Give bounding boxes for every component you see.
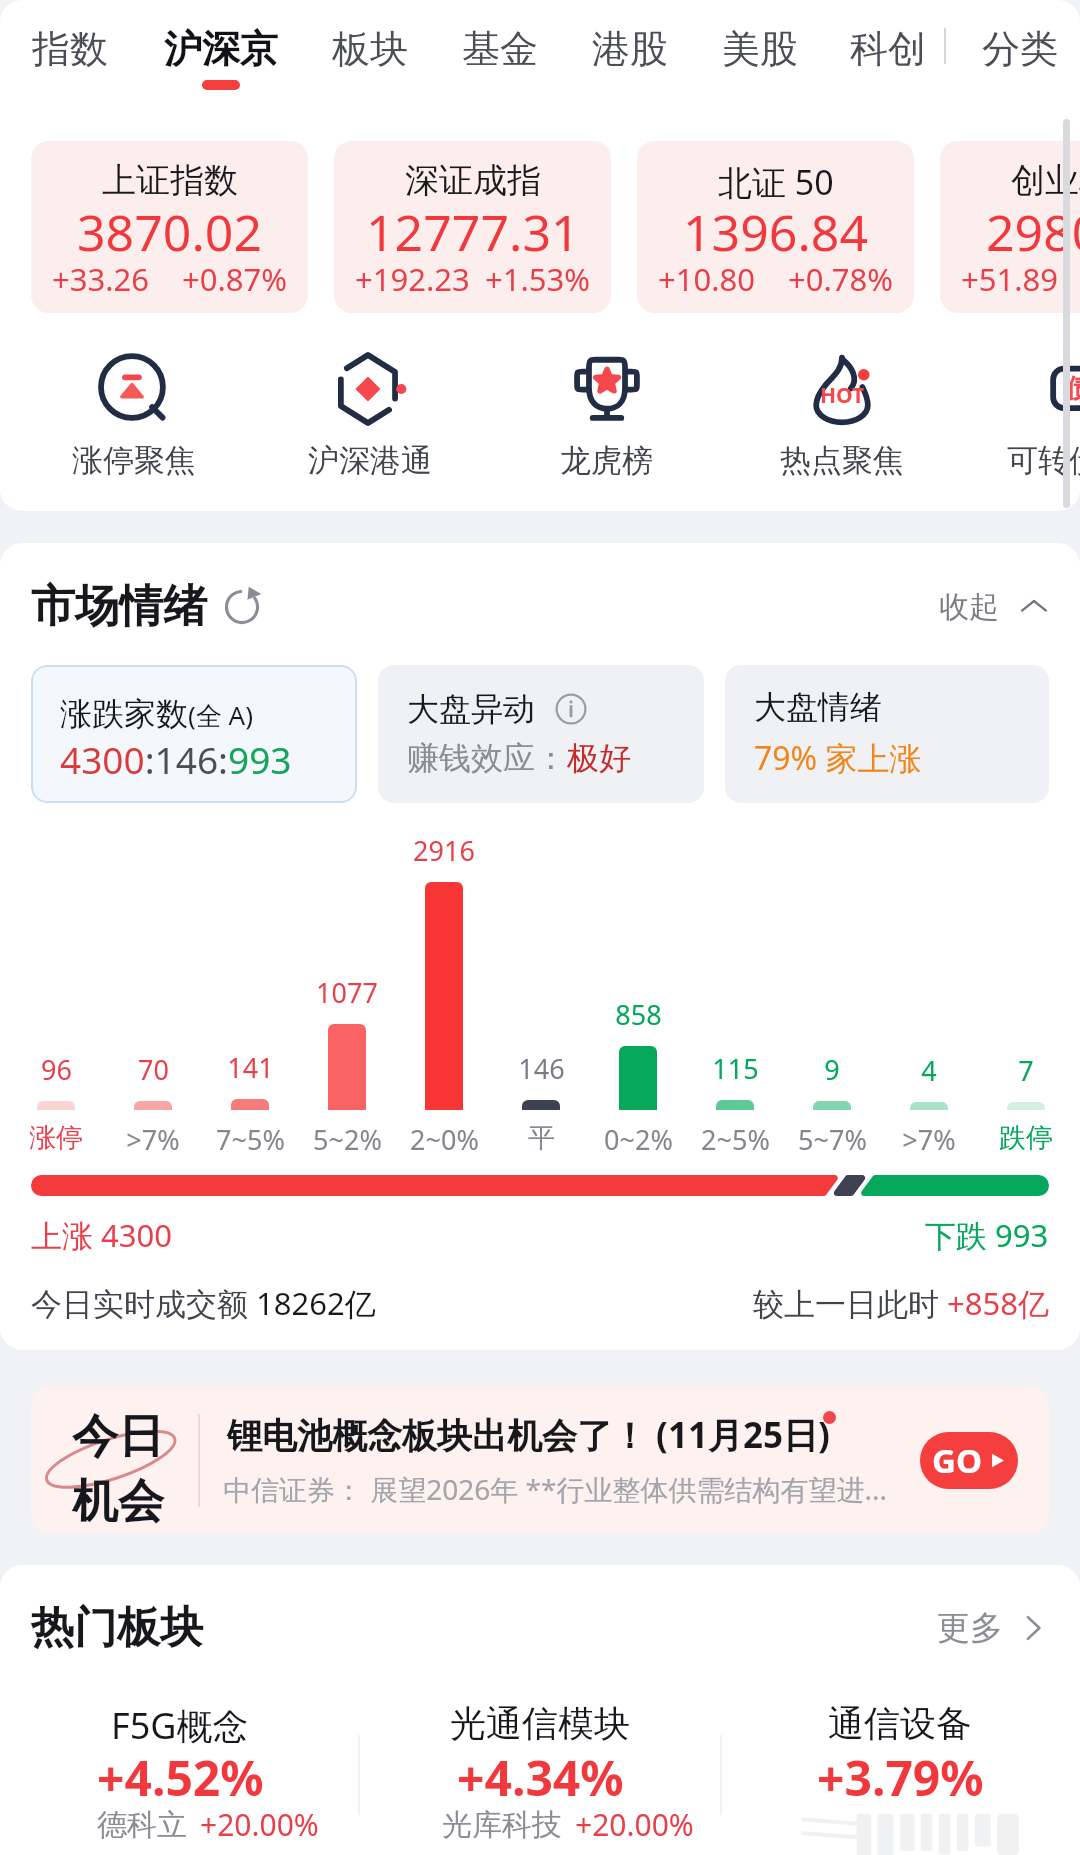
button[interactable]: HOT	[724, 355, 960, 485]
staticText: 沪深港通	[308, 441, 432, 480]
staticText: 7	[1018, 1052, 1034, 1089]
staticText: +20.00%	[575, 1804, 694, 1845]
staticText: 德科立	[97, 1806, 187, 1844]
staticText: 115	[712, 1050, 759, 1087]
staticText: +0.78%	[788, 258, 893, 300]
staticText: 热点聚焦	[780, 441, 904, 480]
staticText: 7~5%	[216, 1121, 285, 1158]
staticText: 极好	[567, 738, 631, 778]
button[interactable]: 美股	[700, 0, 820, 108]
staticText: 市场情绪	[31, 579, 207, 634]
staticText: 跌停	[999, 1121, 1053, 1155]
button[interactable]: 上证指数	[31, 141, 308, 313]
button[interactable]: GO	[920, 1432, 1018, 1489]
staticText: 分类	[982, 25, 1058, 73]
staticText: 赚钱效应：	[407, 738, 567, 778]
staticText: 涨停聚焦	[72, 441, 196, 480]
button[interactable]: 板块	[310, 0, 430, 108]
button[interactable]: 分类	[960, 0, 1080, 108]
staticText: 收起	[939, 588, 999, 626]
button[interactable]: Refresh	[221, 586, 263, 628]
staticText: 机会	[72, 1473, 164, 1531]
staticText: 热门板块	[31, 1601, 203, 1655]
staticText: +4.34%	[457, 1745, 624, 1810]
button[interactable]: 今日	[31, 1387, 1049, 1533]
staticText: 大盘异动	[407, 689, 535, 729]
staticText: +51.89	[961, 258, 1058, 300]
button[interactable]: 基金	[440, 0, 560, 108]
staticText: 下跌 993	[925, 1214, 1049, 1256]
staticText: 2916	[413, 832, 475, 869]
button[interactable]: 沪深京	[141, 0, 301, 108]
staticText: +4.52%	[97, 1745, 264, 1810]
staticText: 沪深京	[164, 25, 278, 73]
staticText: +20.00%	[200, 1804, 319, 1845]
staticText: 3870.02	[77, 198, 262, 266]
button[interactable]: 收起	[939, 588, 1049, 626]
staticText: 上涨 4300	[31, 1214, 172, 1256]
button[interactable]: 光通信模块	[360, 1685, 720, 1855]
button[interactable]: 科创	[828, 0, 948, 108]
staticText: 12777.31	[366, 198, 580, 266]
staticText: +192.23	[355, 258, 470, 300]
staticText: 光库科技	[442, 1806, 562, 1844]
staticText: F5G概念	[111, 1701, 249, 1750]
staticText: GO	[932, 1438, 982, 1483]
staticText: 债	[1066, 372, 1080, 405]
button[interactable]: 更多	[937, 1607, 1049, 1649]
staticText: +33.26	[52, 258, 149, 300]
staticText: 96	[41, 1051, 72, 1088]
staticText: 龙虎榜	[560, 441, 653, 480]
staticText: 深证成指	[405, 159, 541, 202]
button[interactable]: 大盘异动	[378, 665, 704, 803]
staticText: 5~2%	[313, 1121, 382, 1158]
staticText: 科创	[850, 25, 926, 73]
button[interactable]: F5G概念	[0, 1685, 360, 1855]
button[interactable]: 创业板指	[940, 141, 1080, 313]
staticText: +3.79%	[817, 1745, 984, 1810]
staticText: 2~0%	[410, 1121, 479, 1158]
staticText: 平	[528, 1121, 555, 1155]
staticText: 今日	[72, 1408, 164, 1466]
staticText: 858	[615, 996, 662, 1033]
staticText: 指数	[32, 25, 108, 73]
staticText: HOT	[820, 381, 865, 410]
button[interactable]: 大盘情绪	[725, 665, 1049, 803]
staticText: 141	[227, 1049, 274, 1086]
staticText: 5~7%	[798, 1121, 867, 1158]
staticText: 今日实时成交额 18262亿	[31, 1282, 376, 1324]
staticText: >7%	[126, 1121, 180, 1158]
staticText: 4	[921, 1052, 937, 1089]
button[interactable]: 港股	[570, 0, 690, 108]
staticText: >7%	[902, 1121, 956, 1158]
staticText: 中信证券： 展望2026年 **行业整体供需结构有望进...	[223, 1470, 887, 1508]
staticText: 上证指数	[102, 159, 238, 202]
button[interactable]: 涨跌家数(全 A)	[31, 665, 357, 803]
button[interactable]: 深证成指	[334, 141, 611, 313]
staticText: 9	[824, 1051, 840, 1088]
staticText: 大盘情绪	[754, 687, 882, 727]
button[interactable]: 债	[935, 355, 1080, 485]
button[interactable]: 通信设备	[720, 1685, 1080, 1855]
button[interactable]: 沪深港通	[252, 355, 488, 485]
staticText: 70	[138, 1051, 169, 1088]
staticText: 可转债	[1007, 441, 1080, 480]
staticText: 2~5%	[701, 1121, 770, 1158]
staticText: 锂电池概念板块出机会了！ (11月25日)	[227, 1411, 830, 1459]
staticText: 板块	[332, 25, 408, 73]
staticText: 4300:146:993	[60, 734, 292, 784]
staticText: 创业板指	[1011, 159, 1080, 202]
button[interactable]: 涨停聚焦	[16, 355, 252, 485]
button[interactable]: 北证 50	[637, 141, 914, 313]
staticText: 更多	[937, 1607, 1003, 1649]
staticText: 1077	[316, 974, 378, 1011]
staticText: 北证 50	[718, 159, 834, 205]
staticText: 0~2%	[604, 1121, 673, 1158]
button[interactable]: 指数	[10, 0, 130, 108]
staticText: 79% 家上涨	[754, 736, 922, 780]
staticText: 2980.13	[986, 198, 1080, 266]
staticText: 146	[518, 1050, 565, 1087]
staticText: +0.87%	[182, 258, 287, 300]
staticText: 涨跌家数(全 A)	[60, 694, 253, 734]
button[interactable]: 龙虎榜	[488, 355, 724, 485]
